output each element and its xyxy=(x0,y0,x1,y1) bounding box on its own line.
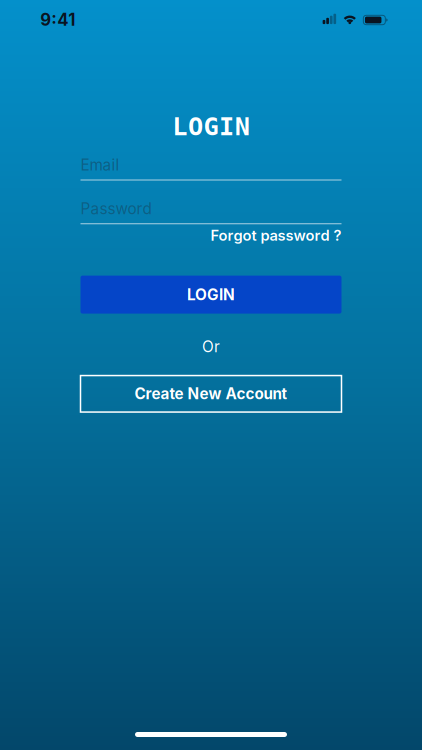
staticText: O xyxy=(188,112,203,141)
staticText: LOGIN xyxy=(187,285,235,304)
staticText: I xyxy=(219,112,234,141)
staticText: Password xyxy=(80,199,151,218)
staticText: 9:41 xyxy=(40,10,75,30)
button[interactable]: Forgot password ? xyxy=(210,227,341,244)
staticText: Create New Account xyxy=(134,385,287,403)
staticText: N xyxy=(235,112,250,141)
staticText: G xyxy=(203,112,218,141)
button[interactable]: Password xyxy=(80,199,341,224)
staticText: L xyxy=(172,112,187,141)
button[interactable]: LOGIN xyxy=(80,276,341,314)
button[interactable]: Create New Account xyxy=(80,376,341,412)
staticText: Email xyxy=(80,156,119,174)
button[interactable]: Email xyxy=(80,156,341,181)
staticText: Or xyxy=(202,337,220,356)
staticText: Forgot password ? xyxy=(210,227,341,244)
